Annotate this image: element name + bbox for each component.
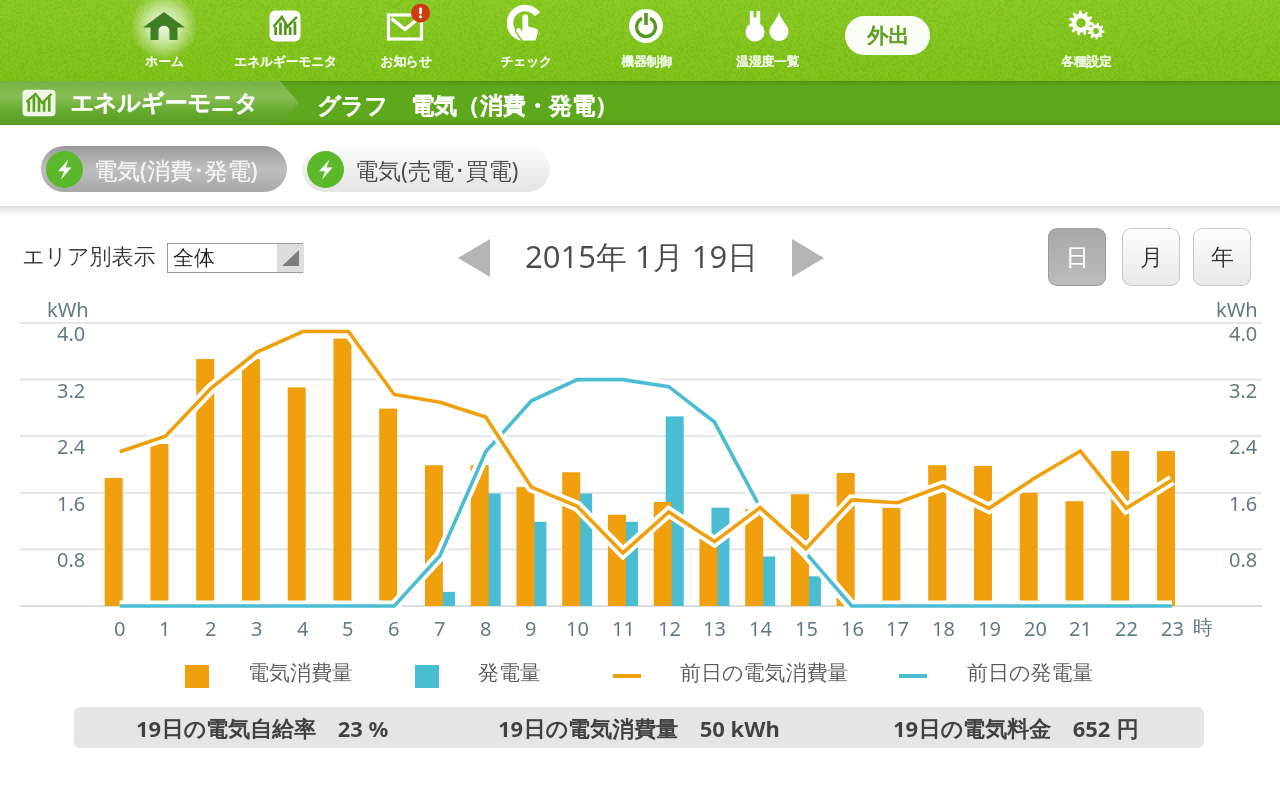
staticText: 各種設定 bbox=[1061, 54, 1112, 70]
staticText: 電気消費量 bbox=[248, 660, 353, 686]
staticText: 2015年 1月 19日 bbox=[525, 235, 759, 277]
staticText: 10 bbox=[566, 615, 589, 642]
staticText: 22 bbox=[1115, 615, 1138, 642]
staticText: 2.4 bbox=[1229, 433, 1258, 460]
staticText: 17 bbox=[886, 615, 909, 642]
staticText: 2 bbox=[205, 615, 217, 642]
staticText: チェック bbox=[500, 54, 552, 70]
staticText: エネルギーモニタ bbox=[70, 89, 258, 118]
staticText: 19日の電気料金 652 円 bbox=[893, 713, 1139, 743]
staticText: 20 bbox=[1024, 615, 1047, 642]
button[interactable]: チェック bbox=[426, 0, 626, 81]
staticText: 19日の電気消費量 50 kWh bbox=[498, 713, 780, 743]
button[interactable]: お知らせ bbox=[306, 0, 506, 81]
staticText: 電気(売電･買電) bbox=[355, 154, 519, 185]
staticText: 4 bbox=[297, 615, 309, 642]
staticText: 発電量 bbox=[478, 660, 541, 686]
button[interactable]: 前の日 bbox=[458, 239, 490, 277]
staticText: お知らせ bbox=[380, 54, 432, 70]
staticText: 1.6 bbox=[57, 490, 86, 517]
staticText: 3.2 bbox=[1229, 377, 1258, 404]
staticText: 6 bbox=[388, 615, 400, 642]
staticText: 8 bbox=[480, 615, 492, 642]
staticText: 12 bbox=[658, 615, 681, 642]
button[interactable]: 各種設定 bbox=[986, 0, 1186, 81]
button[interactable]: ホーム bbox=[64, 0, 264, 81]
staticText: 18 bbox=[932, 615, 955, 642]
staticText: 4.0 bbox=[57, 320, 86, 347]
staticText: kWh bbox=[47, 296, 89, 323]
staticText: 月 bbox=[1140, 243, 1163, 272]
staticText: 0 bbox=[114, 615, 126, 642]
staticText: 15 bbox=[795, 615, 818, 642]
staticText: 電気(消費･発電) bbox=[94, 154, 258, 185]
staticText: 19日の電気自給率 23 % bbox=[136, 713, 389, 743]
staticText: 13 bbox=[703, 615, 726, 642]
staticText: 11 bbox=[612, 615, 635, 642]
staticText: 4.0 bbox=[1229, 320, 1258, 347]
staticText: 2.4 bbox=[57, 433, 86, 460]
staticText: 3.2 bbox=[57, 377, 86, 404]
staticText: 温湿度一覧 bbox=[736, 54, 799, 70]
staticText: グラフ 電気（消費・発電） bbox=[317, 89, 618, 120]
staticText: 全体 bbox=[173, 245, 215, 271]
button[interactable]: 外出 bbox=[845, 16, 930, 55]
staticText: 1.6 bbox=[1229, 490, 1258, 517]
staticText: 日 bbox=[1066, 243, 1089, 272]
staticText: 時 bbox=[1193, 615, 1213, 640]
button[interactable]: 年 bbox=[1194, 229, 1250, 285]
button[interactable]: 温湿度一覧 bbox=[667, 0, 867, 81]
staticText: kWh bbox=[1216, 296, 1258, 323]
staticText: 9 bbox=[525, 615, 537, 642]
button[interactable]: 電気(売電･買電) bbox=[302, 146, 550, 192]
staticText: 5 bbox=[342, 615, 354, 642]
staticText: 16 bbox=[841, 615, 864, 642]
staticText: 3 bbox=[251, 615, 263, 642]
staticText: 外出 bbox=[867, 23, 909, 49]
staticText: エリア別表示 bbox=[22, 243, 156, 271]
button[interactable]: 次の日 bbox=[792, 239, 824, 277]
button[interactable]: 月 bbox=[1123, 229, 1179, 285]
staticText: 23 bbox=[1161, 615, 1184, 642]
staticText: 0.8 bbox=[57, 546, 86, 573]
staticText: エネルギーモニタ bbox=[234, 54, 337, 70]
staticText: 機器制御 bbox=[621, 54, 672, 70]
staticText: 前日の発電量 bbox=[967, 660, 1094, 686]
staticText: ホーム bbox=[145, 54, 184, 70]
staticText: 19 bbox=[978, 615, 1001, 642]
button[interactable]: 電気(消費･発電) bbox=[41, 146, 287, 192]
staticText: 14 bbox=[749, 615, 772, 642]
staticText: 1 bbox=[159, 615, 171, 642]
button[interactable]: 全体 bbox=[168, 244, 302, 272]
staticText: 21 bbox=[1069, 615, 1092, 642]
staticText: 0.8 bbox=[1229, 546, 1258, 573]
button[interactable]: 日 bbox=[1049, 229, 1105, 285]
staticText: 年 bbox=[1211, 243, 1234, 272]
button[interactable]: 機器制御 bbox=[546, 0, 746, 81]
staticText: 7 bbox=[434, 615, 446, 642]
button[interactable]: エネルギーモニタ bbox=[185, 0, 385, 81]
staticText: 前日の電気消費量 bbox=[680, 660, 849, 686]
